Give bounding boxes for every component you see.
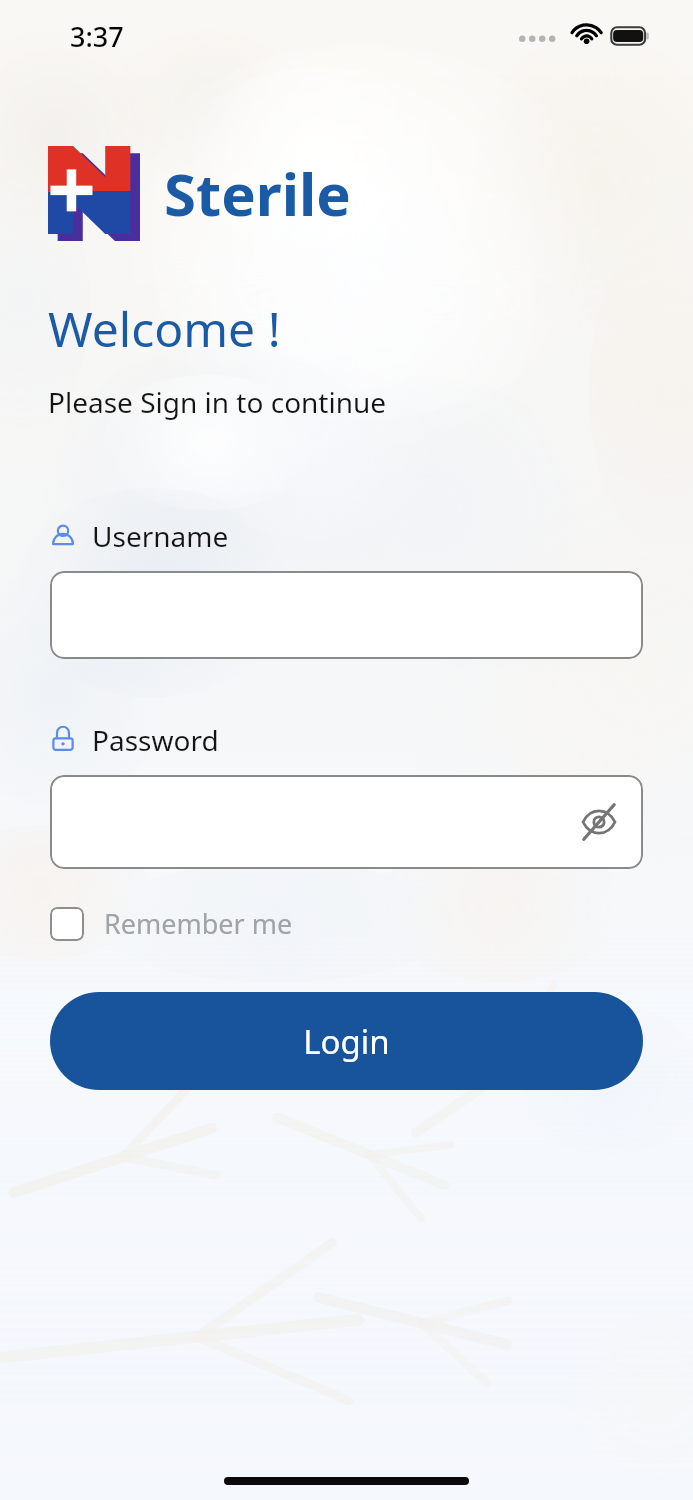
button[interactable]: Remember me — [50, 905, 293, 942]
staticText: Login — [303, 1019, 390, 1064]
staticText: Username — [92, 517, 229, 555]
staticText: 3:37 — [70, 18, 124, 55]
staticText: Sterile — [164, 154, 351, 233]
staticText: Welcome ! — [48, 296, 281, 361]
button[interactable]: Password input field — [50, 775, 643, 869]
staticText: Please Sign in to continue — [48, 383, 387, 421]
staticText: Password — [92, 721, 219, 759]
staticText: Remember me — [104, 905, 293, 942]
button[interactable]: Login — [50, 992, 643, 1090]
button[interactable]: Username input field — [50, 571, 643, 659]
button[interactable]: Show password — [573, 796, 625, 848]
